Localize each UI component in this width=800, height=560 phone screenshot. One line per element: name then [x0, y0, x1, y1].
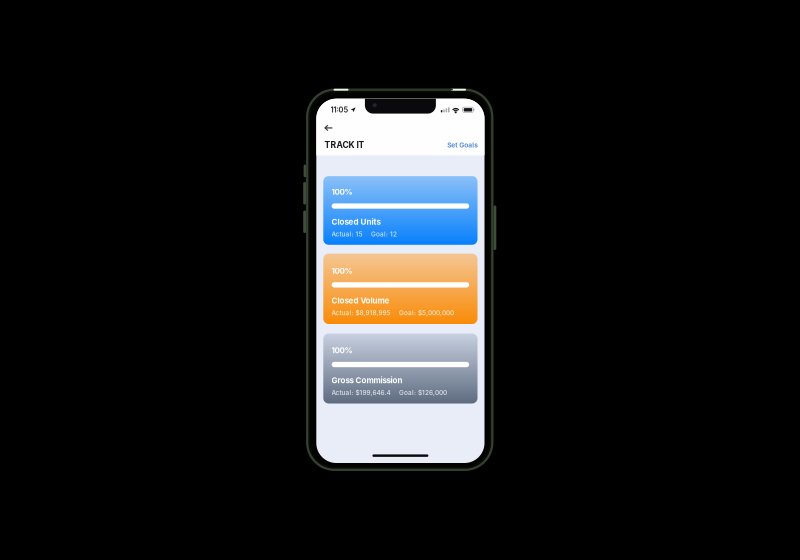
- staticText: Actual: 15: [332, 230, 363, 238]
- staticText: 100%: [332, 187, 353, 197]
- button[interactable]: TRACK IT: [316, 99, 356, 109]
- staticText: 100%: [332, 266, 353, 276]
- staticText: Gross Commission: [332, 375, 403, 385]
- button[interactable]: Back: [316, 99, 334, 113]
- staticText: Closed Volume: [332, 296, 390, 305]
- staticText: Goal: 12: [371, 230, 397, 238]
- button[interactable]: Set Goals: [316, 99, 347, 107]
- staticText: Goal: $5,000,000: [399, 309, 454, 317]
- staticText: Goal: $126,000: [399, 389, 447, 396]
- button[interactable]: 100%: [323, 254, 477, 324]
- staticText: Actual: $199,646.4: [332, 389, 391, 396]
- button[interactable]: 100%: [323, 333, 477, 403]
- staticText: 11:05: [331, 105, 349, 114]
- staticText: Actual: $8,918,995: [332, 309, 391, 317]
- staticText: Closed Units: [332, 217, 381, 227]
- staticText: 100%: [332, 346, 353, 355]
- staticText: Set Goals: [447, 141, 478, 149]
- staticText: TRACK IT: [324, 140, 364, 150]
- button[interactable]: 100%: [323, 176, 477, 245]
